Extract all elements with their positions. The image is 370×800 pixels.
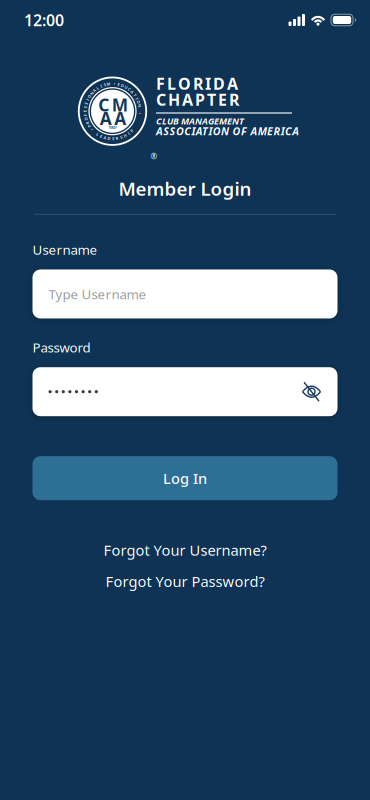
staticText: Forgot Your Password? (105, 572, 264, 591)
staticText: L (96, 132, 98, 137)
staticText: Type Username (48, 285, 146, 303)
staticText: E (100, 134, 102, 139)
staticText: A (131, 89, 134, 95)
staticText: CM (98, 93, 128, 116)
staticText: T (134, 92, 136, 98)
staticText: L (97, 85, 99, 91)
staticText: CLUB MANAGEMENT (156, 115, 244, 127)
staticText: E (84, 109, 86, 114)
staticText: A (93, 88, 96, 93)
staticText: • (139, 111, 141, 116)
staticText: C (128, 87, 131, 92)
staticText: P (131, 128, 133, 133)
staticText: I (128, 131, 129, 136)
button[interactable]: Log In (32, 456, 337, 500)
staticText: S (104, 82, 106, 87)
staticText: • (91, 127, 93, 132)
button[interactable]: Show password (291, 375, 331, 409)
staticText: I (101, 83, 102, 89)
staticText: N (90, 91, 93, 96)
staticText: D (108, 136, 111, 141)
staticText: O (137, 99, 140, 105)
staticText: 1927 (108, 124, 116, 130)
staticText: E (118, 82, 120, 87)
staticText: O (88, 94, 91, 99)
staticText: S (84, 105, 86, 110)
staticText: Log In (163, 468, 207, 488)
button[interactable]: Forgot Your Password? (105, 572, 264, 591)
staticText: Member Login (118, 176, 251, 201)
staticText: I (87, 97, 88, 102)
staticText: S (85, 101, 87, 106)
staticText: E (112, 136, 114, 141)
staticText: M (107, 81, 111, 87)
staticText: C H A P T E R (156, 89, 239, 110)
staticText: N (138, 103, 141, 108)
staticText: F (84, 113, 86, 118)
staticText: O (85, 116, 88, 122)
staticText: Forgot Your Username? (103, 540, 266, 560)
staticText: U (124, 85, 127, 90)
staticText: I (136, 96, 137, 101)
staticText: 12:00 (24, 9, 64, 31)
staticText: AA (100, 107, 126, 130)
staticText: Password (32, 338, 90, 356)
staticText: Username (32, 241, 97, 258)
staticText: R (86, 120, 89, 125)
staticText: ASSOCIATION OF AMERICA (156, 124, 299, 138)
button[interactable]: Forgot Your Username? (103, 540, 266, 560)
staticText: S (120, 135, 122, 140)
staticText: F L O R I D A (156, 73, 238, 94)
staticText: A (103, 135, 106, 140)
staticText: R (116, 136, 119, 141)
staticText: D (121, 83, 124, 88)
staticText: ® (150, 151, 157, 162)
button[interactable]: Username text field (32, 269, 337, 318)
staticText: • (114, 81, 116, 86)
staticText: P (88, 123, 90, 129)
staticText: H (124, 133, 127, 138)
